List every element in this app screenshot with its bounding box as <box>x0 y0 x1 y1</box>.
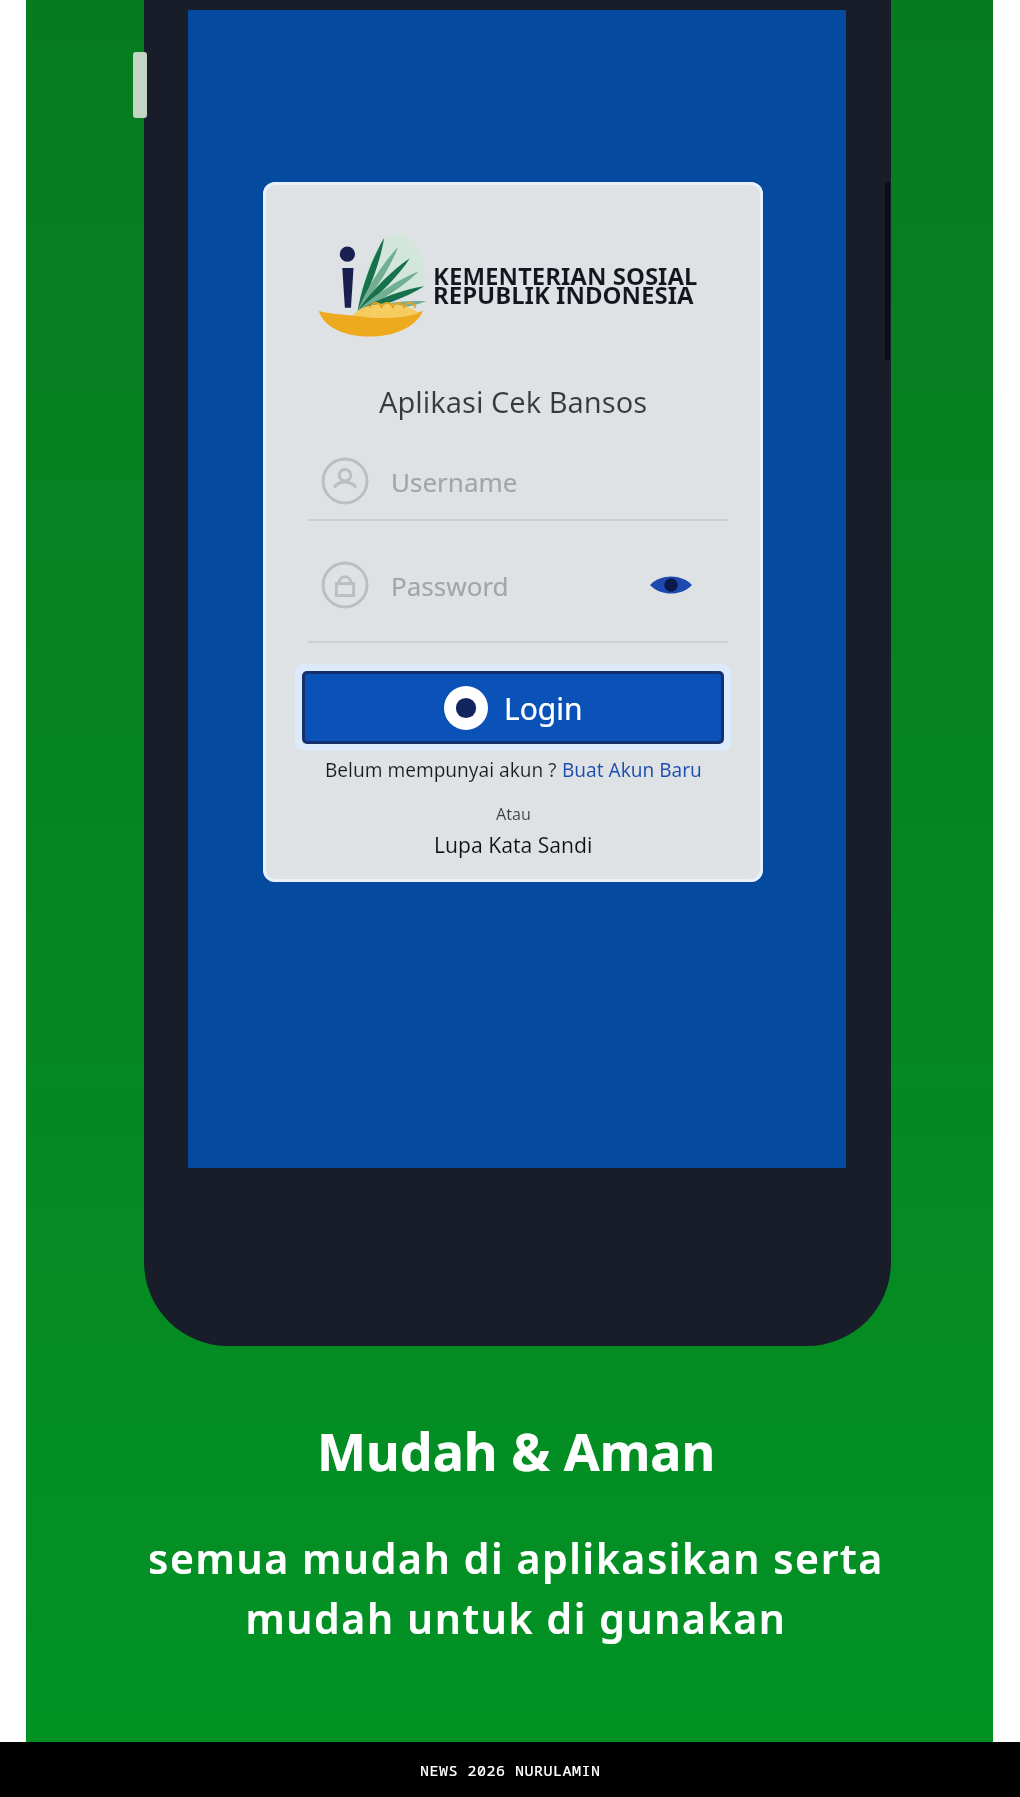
button[interactable]: Login <box>305 674 721 741</box>
button[interactable]: Password <box>308 547 728 643</box>
staticText: KEMENTERIAN SOSIAL REPUBLIK INDONESIA <box>433 259 698 311</box>
staticText: Login <box>504 688 583 729</box>
staticText: Password <box>391 568 509 603</box>
staticText: semua mudah di aplikasikan serta mudah u… <box>148 1530 884 1646</box>
staticText: Buat Akun Baru <box>562 757 702 783</box>
button[interactable]: Username <box>308 443 728 521</box>
staticText: Username <box>391 464 518 499</box>
staticText: Belum mempunyai akun ? <box>325 757 562 783</box>
staticText: Aplikasi Cek Bansos <box>379 382 648 421</box>
button[interactable]: Show password <box>644 564 698 606</box>
staticText: Mudah & Aman <box>317 1415 716 1486</box>
button[interactable]: Lupa Kata Sandi <box>434 831 593 860</box>
button[interactable]: Belum mempunyai akun ? <box>325 757 702 783</box>
staticText: Atau <box>496 803 531 825</box>
staticText: NEWS 2026 NURULAMIN <box>420 1760 601 1780</box>
